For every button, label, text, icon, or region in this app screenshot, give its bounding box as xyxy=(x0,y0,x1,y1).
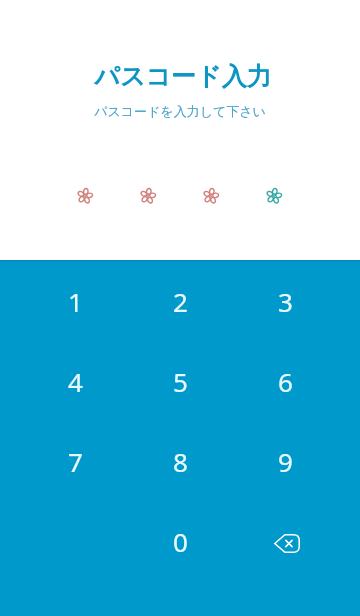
staticText: 9 xyxy=(278,444,293,479)
staticText: 7 xyxy=(68,444,83,479)
staticText: 8 xyxy=(173,444,188,479)
button[interactable]: 2 xyxy=(128,261,233,341)
button[interactable]: Backspace xyxy=(233,501,338,581)
button[interactable]: 7 xyxy=(22,421,128,501)
button[interactable]: 9 xyxy=(233,421,338,501)
staticText: 6 xyxy=(278,364,293,399)
staticText: 2 xyxy=(173,284,188,319)
staticText: 4 xyxy=(68,364,83,399)
button[interactable]: 1 xyxy=(22,261,128,341)
button[interactable]: 6 xyxy=(233,341,338,421)
button[interactable]: 0 xyxy=(128,501,233,581)
button[interactable]: 3 xyxy=(233,261,338,341)
staticText: パスコードを入力して下さい xyxy=(94,103,266,119)
button[interactable]: 4 xyxy=(22,341,128,421)
staticText: 3 xyxy=(278,284,293,319)
button[interactable]: 8 xyxy=(128,421,233,501)
staticText: 0 xyxy=(173,524,188,559)
staticText: 5 xyxy=(173,364,188,399)
staticText: 1 xyxy=(68,284,83,319)
button[interactable]: 5 xyxy=(128,341,233,421)
staticText: パスコード入力 xyxy=(94,61,272,92)
